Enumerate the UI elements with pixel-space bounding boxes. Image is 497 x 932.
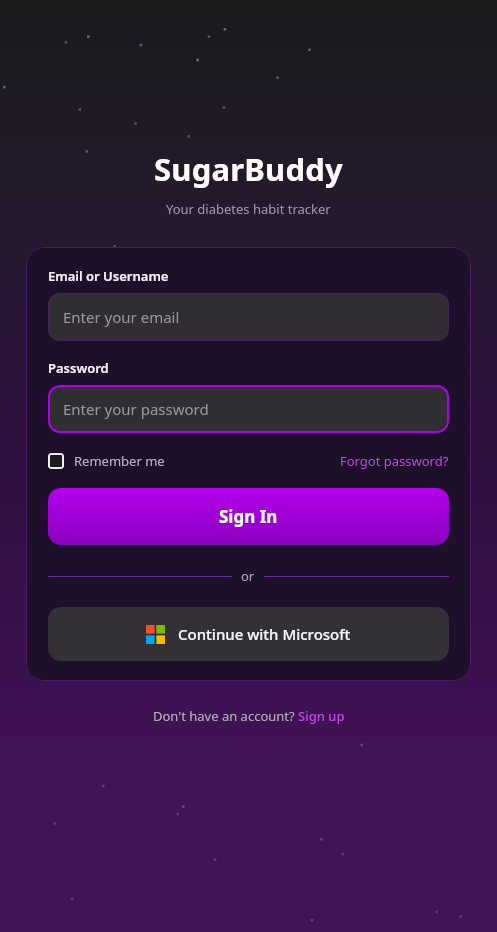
button[interactable]: Enter your email: [48, 293, 449, 341]
staticText: Continue with Microsoft: [178, 624, 351, 644]
staticText: Your diabetes habit tracker: [166, 200, 331, 218]
staticText: Enter your password: [63, 399, 209, 419]
button[interactable]: Forgot password?: [340, 452, 449, 470]
button[interactable]: Don't have an account? Sign up: [153, 707, 345, 725]
staticText: Sign In: [219, 505, 278, 528]
staticText: Don't have an account? Sign up: [153, 707, 345, 725]
staticText: SugarBuddy: [154, 148, 343, 190]
staticText: Email or Username: [48, 267, 169, 285]
button[interactable]: Remember me: [48, 452, 165, 470]
staticText: Forgot password?: [340, 452, 449, 470]
staticText: Remember me: [74, 452, 165, 470]
button[interactable]: Enter your password: [48, 385, 449, 433]
button[interactable]: Sign In: [48, 488, 449, 545]
staticText: Enter your email: [63, 307, 180, 327]
button[interactable]: Continue with Microsoft: [48, 607, 449, 661]
staticText: or: [241, 567, 255, 585]
staticText: Password: [48, 359, 109, 377]
